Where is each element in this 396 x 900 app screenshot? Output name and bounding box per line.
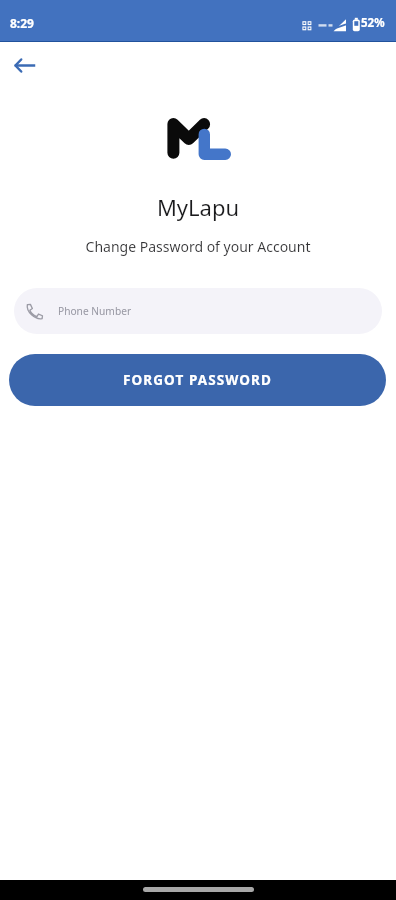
- button[interactable]: Back: [8, 49, 40, 81]
- button[interactable]: Phone Number: [14, 288, 382, 334]
- staticText: Change Password of your Account: [0, 237, 396, 256]
- staticText: FORGOT PASSWORD: [123, 371, 273, 389]
- button[interactable]: FORGOT PASSWORD: [9, 354, 386, 406]
- staticText: 8:29: [10, 15, 34, 31]
- staticText: MyLapu: [0, 192, 396, 222]
- staticText: 52%: [361, 15, 385, 31]
- staticText: Phone Number: [58, 304, 132, 318]
